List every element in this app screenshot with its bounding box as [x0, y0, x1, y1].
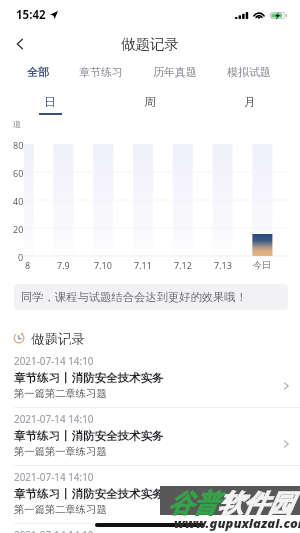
- staticText: 20: [13, 223, 24, 235]
- staticText: 周: [144, 95, 156, 109]
- staticText: 80: [13, 139, 24, 151]
- button[interactable]: 日: [0, 93, 100, 117]
- staticText: 做题记录: [31, 331, 85, 345]
- staticText: 60: [13, 167, 24, 179]
- staticText: 0: [18, 251, 24, 263]
- staticText: 2021-07-14 14:10: [14, 354, 94, 367]
- button[interactable]: 2021-07-14 14:10: [0, 350, 300, 408]
- staticText: 第一篇第二章练习题: [14, 503, 107, 516]
- staticText: 道: [13, 119, 21, 129]
- staticText: 2021-07-14 14:10: [14, 470, 94, 483]
- button[interactable]: 2021-07-14 14:10: [0, 466, 300, 524]
- staticText: 7.10: [94, 259, 112, 271]
- staticText: 模拟试题: [227, 65, 271, 79]
- staticText: 7.12: [174, 259, 192, 271]
- button[interactable]: 2021-07-14 14:10: [0, 408, 300, 466]
- staticText: 历年真题: [153, 65, 197, 79]
- staticText: 同学，课程与试题结合会达到更好的效果哦！: [21, 290, 247, 304]
- button[interactable]: 历年真题: [153, 65, 197, 79]
- staticText: 章节练习丨消防安全技术实务: [14, 429, 164, 443]
- staticText: 章节练习: [79, 65, 123, 79]
- staticText: 月: [244, 95, 256, 109]
- staticText: 40: [13, 195, 24, 207]
- staticText: 今日: [253, 259, 271, 270]
- button[interactable]: Back: [8, 32, 32, 56]
- staticText: 谷普: [168, 488, 218, 519]
- staticText: 章节练习丨消防安全技术实务: [14, 371, 164, 385]
- staticText: 8: [25, 259, 31, 271]
- staticText: 第一篇第一章练习题: [14, 445, 107, 458]
- staticText: 日: [44, 95, 56, 109]
- button[interactable]: 周: [100, 93, 200, 117]
- staticText: 软件园: [218, 488, 293, 519]
- staticText: 15:42: [16, 7, 46, 23]
- staticText: 7.9: [57, 259, 70, 271]
- staticText: 第一篇第二章练习题: [14, 387, 107, 400]
- button[interactable]: 同学，课程与试题结合会达到更好的效果哦！: [14, 284, 288, 310]
- staticText: 7.13: [214, 259, 232, 271]
- button[interactable]: 章节练习: [79, 65, 123, 79]
- staticText: 2021-07-14 14:10: [14, 528, 94, 533]
- staticText: 7.11: [134, 259, 152, 271]
- button[interactable]: 月: [200, 93, 300, 117]
- staticText: 2021-07-14 14:10: [14, 412, 94, 425]
- staticText: www.gupuxlazal.com: [174, 514, 300, 532]
- staticText: 做题记录: [121, 35, 179, 53]
- button[interactable]: 全部: [27, 65, 49, 79]
- staticText: 全部: [27, 65, 49, 79]
- button[interactable]: 模拟试题: [227, 65, 271, 79]
- button[interactable]: 2021-07-14 14:10: [0, 524, 300, 533]
- staticText: 章节练习丨消防安全技术实务: [14, 487, 164, 501]
